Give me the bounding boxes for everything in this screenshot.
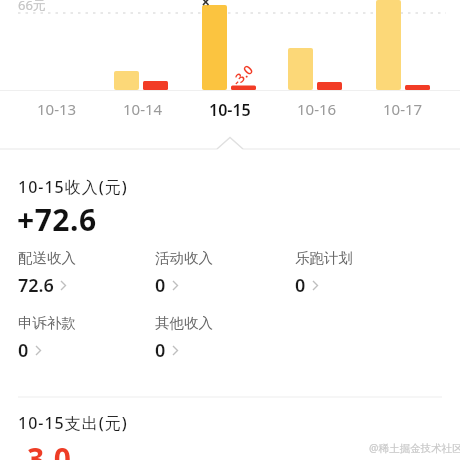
staticText: @稀土掘金技术社区 xyxy=(369,441,460,455)
button[interactable]: 0 xyxy=(295,273,319,298)
staticText: 10-15支出(元) xyxy=(18,412,128,434)
button[interactable]: 10-17 xyxy=(363,99,443,119)
button[interactable]: 0 xyxy=(18,338,42,363)
staticText: 0 xyxy=(295,273,306,298)
button[interactable]: 10-15 xyxy=(190,99,270,121)
button[interactable]: 10-13 xyxy=(17,99,97,119)
staticText: 乐跑计划 xyxy=(295,249,353,267)
staticText: 0 xyxy=(155,273,166,298)
staticText: 10-15 xyxy=(209,99,251,121)
staticText: 其他收入 xyxy=(155,314,213,332)
staticText: 活动收入 xyxy=(155,249,213,267)
staticText: 66元 xyxy=(18,0,46,14)
staticText: 10-14 xyxy=(123,99,163,119)
button[interactable]: 10-16 xyxy=(277,99,357,119)
button[interactable]: 0 xyxy=(155,338,179,363)
staticText: 0 xyxy=(18,338,29,363)
staticText: -3.0 xyxy=(228,60,257,89)
staticText: -3.0 xyxy=(17,438,72,460)
staticText: 72.6 xyxy=(18,273,54,298)
staticText: 10-17 xyxy=(383,99,423,119)
staticText: +72.6 xyxy=(17,199,97,240)
staticText: 配送收入 xyxy=(18,249,76,267)
staticText: 10-13 xyxy=(37,99,77,119)
button[interactable]: 72.6 xyxy=(18,273,67,298)
staticText: 0 xyxy=(155,338,166,363)
button[interactable]: 0 xyxy=(155,273,179,298)
staticText: 10-16 xyxy=(297,99,337,119)
button[interactable]: 10-14 xyxy=(103,99,183,119)
staticText: 申诉补款 xyxy=(18,314,76,332)
staticText: 10-15收入(元) xyxy=(18,176,128,198)
